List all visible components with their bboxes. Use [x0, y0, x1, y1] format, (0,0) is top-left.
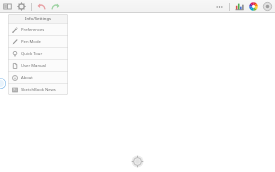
- staticText: Pen Mode: [21, 39, 41, 45]
- staticText: Preferences: [21, 27, 45, 33]
- button[interactable]: Settings: [16, 1, 27, 12]
- button[interactable]: Layers: [2, 1, 13, 12]
- staticText: SketchBook News: [21, 87, 56, 93]
- button[interactable]: Undo: [36, 1, 47, 12]
- button[interactable]: SketchBook News: [8, 84, 68, 95]
- button[interactable]: Levels: [234, 1, 245, 12]
- button[interactable]: Pen Mode: [8, 36, 68, 47]
- staticText: Info/Settings: [25, 16, 52, 22]
- button[interactable]: About: [8, 72, 68, 83]
- button[interactable]: Canvas puck: [131, 155, 144, 168]
- button[interactable]: Preferences: [8, 24, 68, 35]
- staticText: About: [21, 75, 33, 81]
- button[interactable]: Tool puck: [0, 78, 6, 89]
- button[interactable]: Quick Tour: [8, 48, 68, 59]
- button[interactable]: User Manual: [8, 60, 68, 71]
- button[interactable]: Brush: [262, 1, 273, 12]
- button[interactable]: Redo: [50, 1, 61, 12]
- staticText: User Manual: [21, 63, 46, 69]
- staticText: Quick Tour: [21, 51, 43, 57]
- button[interactable]: Info/Settings: [8, 14, 68, 23]
- button[interactable]: More options: [214, 1, 225, 12]
- button[interactable]: Color wheel: [248, 1, 259, 12]
